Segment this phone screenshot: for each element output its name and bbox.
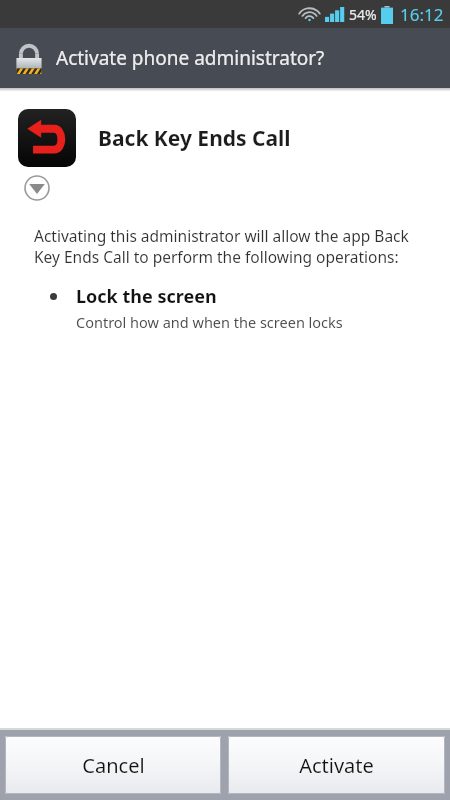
button[interactable]: Activate <box>228 736 445 794</box>
button[interactable]: Cancel <box>5 736 221 794</box>
staticText: Lock the screen <box>76 284 217 309</box>
staticText: Activate phone administrator? <box>56 45 325 71</box>
staticText: Control how and when the screen locks <box>76 312 343 332</box>
staticText: Activate <box>299 752 374 779</box>
staticText: 16:12 <box>400 3 444 26</box>
staticText: Back Key Ends Call <box>98 124 291 153</box>
staticText: Cancel <box>82 752 145 779</box>
button[interactable]: Expand details <box>22 173 52 203</box>
staticText: Activating this administrator will allow… <box>34 225 428 268</box>
staticText: 54% <box>349 5 377 24</box>
